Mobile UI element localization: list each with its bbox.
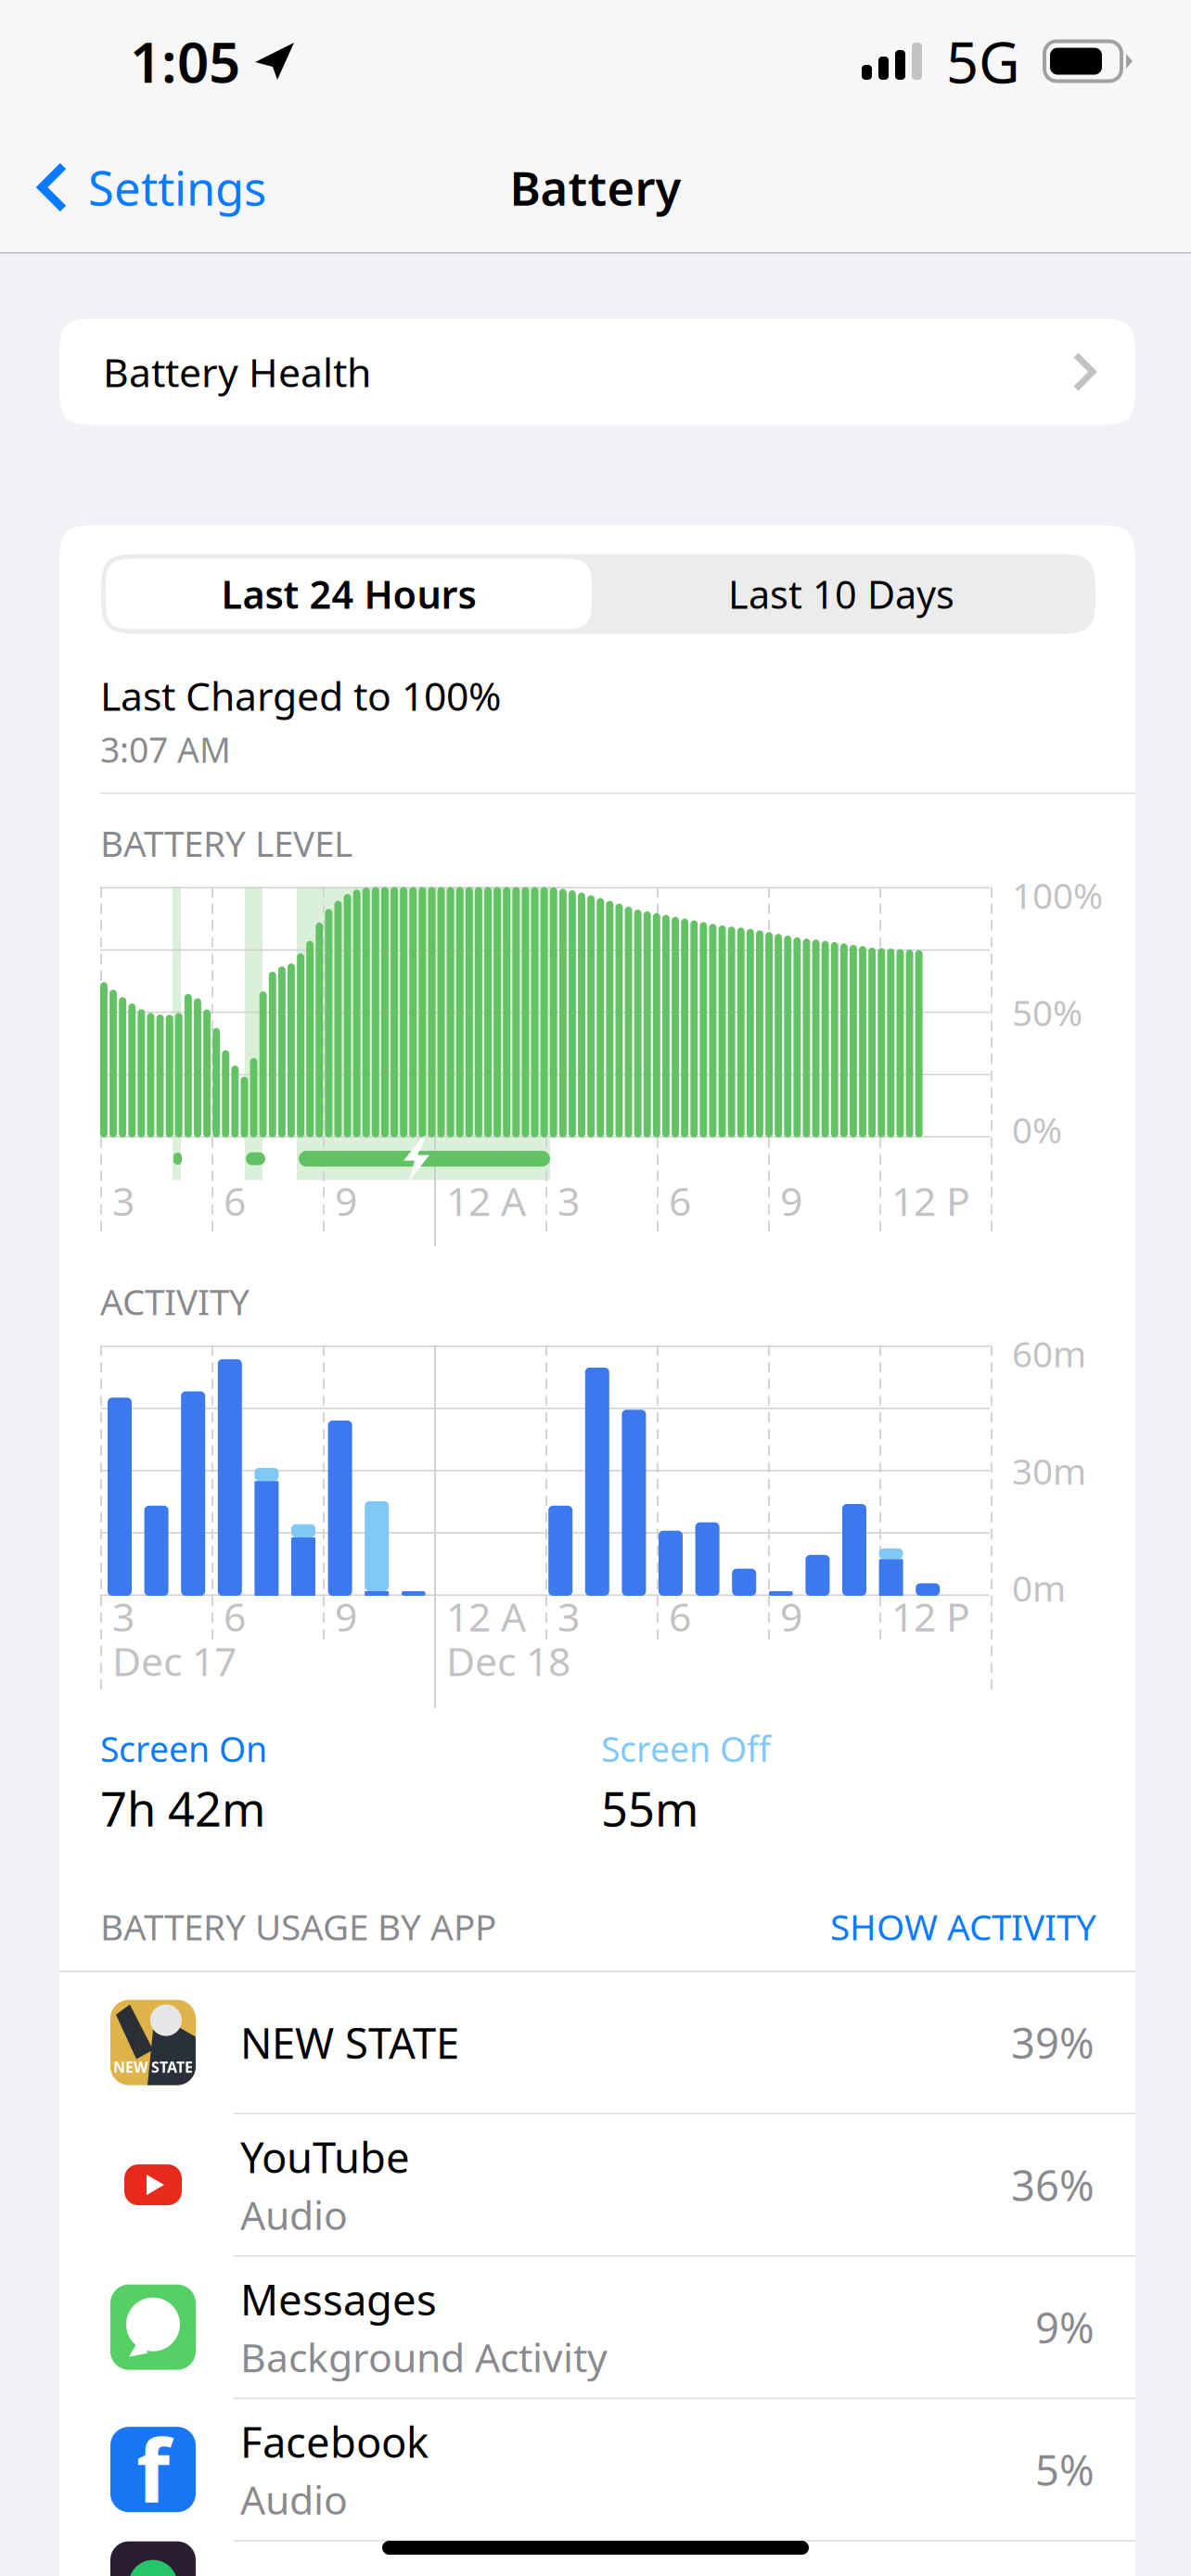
staticText: Dec 18 xyxy=(446,1634,570,1687)
staticText: YouTube xyxy=(240,2129,410,2185)
staticText: 39% xyxy=(1011,2015,1095,2070)
staticText: 9 xyxy=(780,1174,802,1227)
staticText: Battery Health xyxy=(103,346,371,398)
staticText: 60m xyxy=(1012,1330,1086,1377)
staticText: Background Activity xyxy=(240,2331,608,2383)
staticText: Facebook xyxy=(240,2413,429,2469)
staticText: 12 P xyxy=(891,1590,970,1643)
staticText: NEW STATE xyxy=(113,2057,193,2077)
staticText: NEW STATE xyxy=(240,2015,459,2070)
staticText: 12 A xyxy=(446,1174,526,1227)
staticText: Dec 17 xyxy=(112,1634,237,1687)
staticText: 50% xyxy=(1012,988,1082,1036)
staticText: 12 P xyxy=(891,1174,970,1227)
staticText: 55m xyxy=(601,1777,698,1840)
staticText: 3 xyxy=(112,1590,134,1643)
staticText: BATTERY LEVEL xyxy=(100,819,352,867)
staticText: Last Charged to 100% xyxy=(100,669,501,722)
button[interactable]: Messages xyxy=(59,2257,1135,2399)
staticText: 6 xyxy=(669,1174,691,1227)
staticText: 5G xyxy=(946,23,1020,99)
staticText: Settings xyxy=(88,156,266,219)
staticText: SHOW ACTIVITY xyxy=(830,1903,1096,1950)
button[interactable]: Settings xyxy=(0,122,288,252)
button[interactable]: YouTube xyxy=(59,2114,1135,2257)
staticText: Last 10 Days xyxy=(728,569,954,619)
staticText: 0% xyxy=(1012,1106,1062,1153)
staticText: 5% xyxy=(1035,2442,1095,2497)
staticText: 6 xyxy=(224,1174,246,1227)
staticText: f xyxy=(136,2411,170,2526)
staticText: 30m xyxy=(1012,1447,1086,1494)
staticText: Audio xyxy=(240,2188,348,2241)
staticText: 3 xyxy=(557,1590,580,1643)
staticText: 9% xyxy=(1035,2299,1095,2355)
button[interactable]: Last 24 Hours xyxy=(106,559,592,629)
staticText: BATTERY USAGE BY APP xyxy=(100,1903,496,1950)
staticText: 3:07 AM xyxy=(100,726,231,772)
staticText: 36% xyxy=(1011,2157,1095,2213)
staticText: 0m xyxy=(1012,1564,1066,1612)
button[interactable]: SHOW ACTIVITY xyxy=(830,1903,1096,1950)
button[interactable]: Last 10 Days xyxy=(592,559,1091,629)
staticText: Audio xyxy=(240,2473,348,2526)
staticText: Messages xyxy=(240,2271,437,2327)
staticText: 12 A xyxy=(446,1590,526,1643)
staticText: 9 xyxy=(335,1590,357,1643)
staticText: 9 xyxy=(780,1590,802,1643)
staticText: Battery xyxy=(510,156,681,219)
staticText: 7h 42m xyxy=(100,1777,265,1840)
staticText: 1:05 xyxy=(130,24,240,98)
staticText: 3 xyxy=(557,1174,580,1227)
staticText: 3 xyxy=(112,1174,134,1227)
button[interactable]: Battery Health xyxy=(59,319,1135,425)
button[interactable]: NEW STATE xyxy=(59,1972,1135,2114)
staticText: 6 xyxy=(224,1590,246,1643)
staticText: 100% xyxy=(1012,871,1103,919)
staticText: 9 xyxy=(335,1174,357,1227)
staticText: ACTIVITY xyxy=(100,1277,250,1325)
staticText: Last 24 Hours xyxy=(221,569,476,619)
staticText: Screen Off xyxy=(601,1726,771,1772)
button[interactable] xyxy=(59,2541,1135,2576)
button[interactable]: f xyxy=(59,2399,1135,2541)
staticText: Screen On xyxy=(100,1726,267,1772)
staticText: 6 xyxy=(669,1590,691,1643)
